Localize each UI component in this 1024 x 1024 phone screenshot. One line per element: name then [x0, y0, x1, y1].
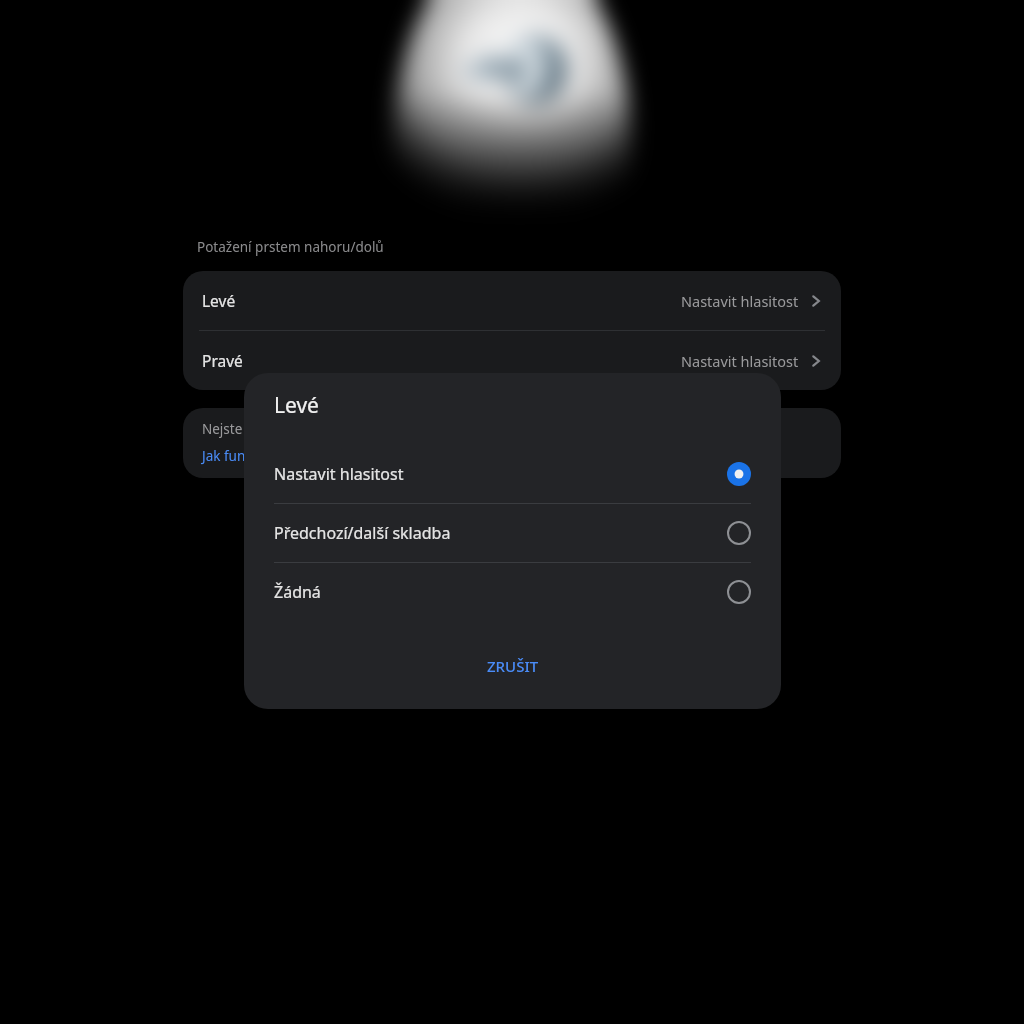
staticText: Žádná	[274, 581, 727, 603]
staticText: Nastavit hlasitost	[681, 351, 799, 371]
button[interactable]: Žádná	[244, 563, 781, 621]
button[interactable]: Levé	[183, 271, 841, 330]
button[interactable]: ZRUŠIT	[244, 643, 781, 689]
staticText: Nejste spokojeni s ovládáním?	[202, 420, 393, 438]
button[interactable]: Nejste spokojeni s ovládáním?	[183, 408, 841, 478]
staticText: Nastavit hlasitost	[681, 291, 799, 311]
staticText: Předchozí/další skladba	[274, 522, 727, 544]
staticText: ZRUŠIT	[487, 656, 539, 676]
staticText: Levé	[274, 391, 319, 420]
staticText: Pravé	[202, 350, 681, 371]
staticText: Nastavit hlasitost	[274, 463, 727, 485]
staticText: Potažení prstem nahoru/dolů	[197, 238, 384, 256]
staticText: Jak funguje ovládání	[202, 447, 331, 465]
button[interactable]: Předchozí/další skladba	[244, 504, 781, 562]
button[interactable]: Pravé	[183, 331, 841, 390]
staticText: Levé	[202, 290, 681, 311]
button[interactable]: Nastavit hlasitost	[244, 445, 781, 503]
